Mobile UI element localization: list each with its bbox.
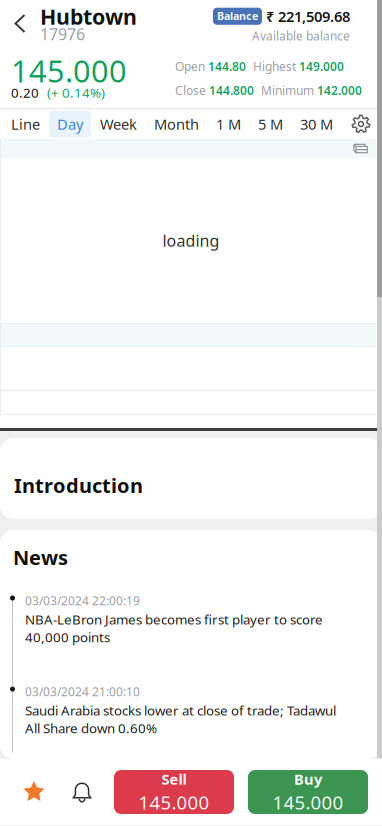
staticText: Minimum	[261, 82, 314, 98]
staticText: ₹ 221,509.68	[266, 6, 350, 26]
staticText: 17976	[40, 23, 85, 45]
staticText: 1 M	[216, 114, 241, 134]
staticText: 149.000	[299, 58, 344, 74]
staticText: Introduction	[14, 472, 143, 499]
button[interactable]: Chart settings	[346, 110, 376, 138]
button[interactable]: 30 M	[292, 110, 341, 138]
button[interactable]: Back	[0, 1, 40, 45]
staticText: Day	[57, 114, 83, 134]
staticText: 144.800	[209, 82, 254, 98]
button[interactable]: Favourite	[12, 766, 56, 818]
staticText: Week	[100, 114, 137, 134]
staticText: Buy	[294, 769, 322, 789]
button[interactable]: 1 M	[208, 110, 249, 138]
staticText: 145.000	[138, 790, 209, 815]
staticText	[296, 58, 299, 74]
staticText: 30 M	[300, 114, 333, 134]
staticText: Hubtown	[40, 2, 137, 31]
staticText: NBA-LeBron James becomes first player to…	[25, 610, 323, 646]
staticText: Sell	[161, 769, 186, 789]
staticText: 03/03/2024 21:00:10	[25, 684, 140, 699]
staticText: (+ 0.14%)	[47, 84, 105, 101]
staticText: Saudi Arabia stocks lower at close of tr…	[25, 701, 336, 737]
staticText: News	[13, 544, 68, 571]
staticText: 03/03/2024 22:00:19	[25, 593, 140, 608]
staticText: Available balance	[252, 28, 350, 44]
button[interactable]: Month	[146, 110, 207, 138]
staticText: 0.20	[11, 84, 39, 101]
staticText: Month	[154, 114, 199, 134]
staticText: loading	[162, 230, 219, 251]
button[interactable]: 5 M	[250, 110, 291, 138]
staticText: Balance	[217, 9, 258, 23]
staticText: 5 M	[258, 114, 283, 134]
staticText: Close	[175, 82, 206, 98]
staticText: 145.000	[272, 790, 343, 815]
button[interactable]: Line	[3, 110, 48, 138]
button[interactable]: Week	[92, 110, 145, 138]
button[interactable]: Sell	[114, 770, 234, 814]
button[interactable]: Day	[49, 110, 91, 138]
button[interactable]: Buy	[248, 770, 368, 814]
staticText: Highest	[253, 58, 296, 74]
staticText: Open	[175, 58, 205, 74]
staticText: 144.80	[208, 58, 246, 74]
button[interactable]: Alerts	[62, 766, 102, 818]
staticText: 145.000	[11, 50, 127, 91]
staticText: 142.000	[317, 82, 362, 98]
staticText: Line	[11, 114, 40, 134]
